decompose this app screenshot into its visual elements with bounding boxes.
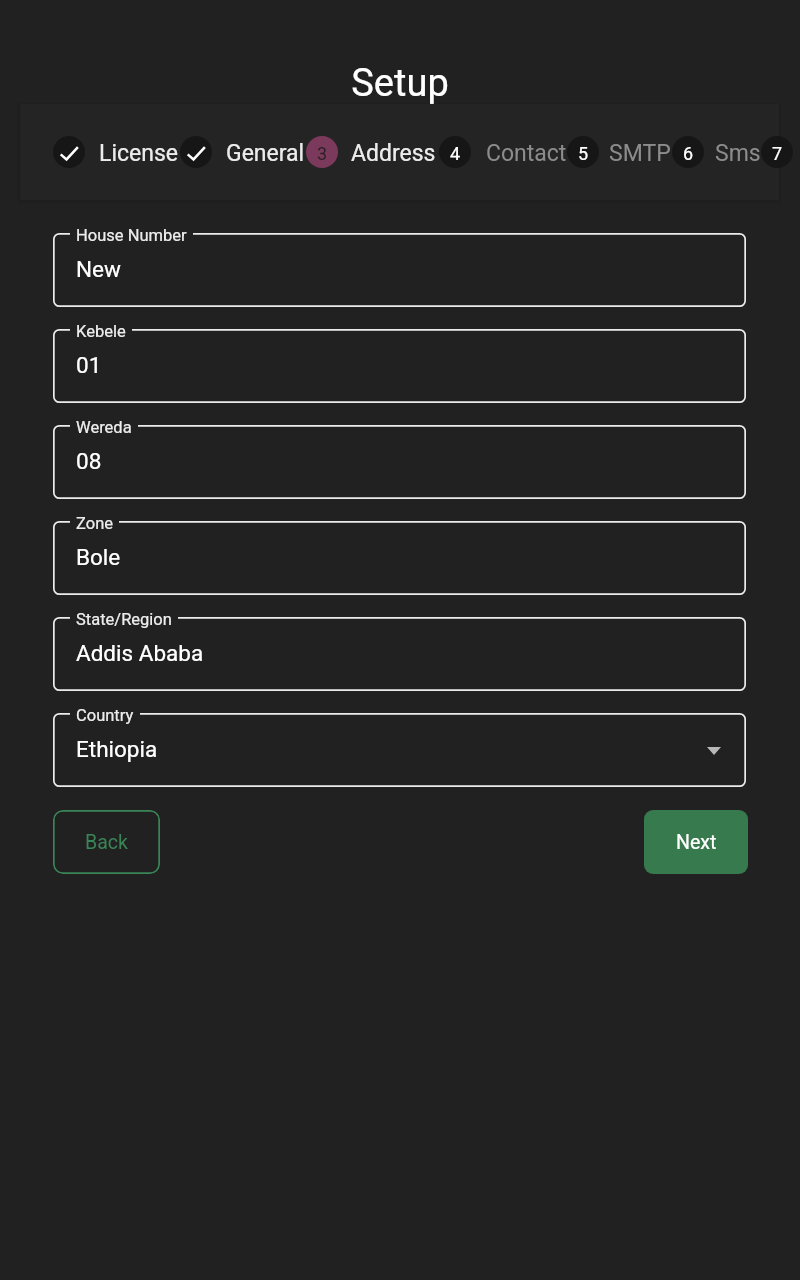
staticText: 08 — [76, 448, 102, 474]
staticText: Address — [351, 140, 436, 167]
staticText: 6 — [683, 143, 694, 164]
button[interactable]: State/Region — [53, 617, 746, 691]
other: Open dropdown — [707, 747, 721, 755]
button[interactable]: Zone — [53, 521, 746, 595]
button[interactable]: Step Address — [306, 136, 436, 168]
button[interactable]: Kebele — [53, 329, 746, 403]
staticText: Setup — [0, 61, 800, 106]
button[interactable]: Step License — [53, 136, 178, 168]
button[interactable]: Wereda — [53, 425, 746, 499]
button[interactable]: Back — [53, 810, 160, 874]
staticText: Bole — [76, 544, 121, 570]
button[interactable]: Step SMTP — [567, 136, 671, 168]
staticText: State/Region — [76, 610, 172, 629]
staticText: Zone — [76, 514, 113, 533]
button[interactable]: Country — [53, 713, 746, 787]
staticText: Addis Ababa — [76, 640, 204, 666]
staticText: 7 — [772, 143, 783, 164]
staticText: Back — [85, 831, 129, 854]
button[interactable]: Step General — [180, 136, 305, 168]
staticText: New — [76, 256, 121, 282]
staticText: Sms — [715, 140, 761, 167]
staticText: Wereda — [76, 418, 132, 437]
button[interactable]: Step Contact — [439, 136, 567, 168]
button[interactable]: Next — [644, 810, 748, 874]
staticText: 5 — [578, 143, 589, 164]
staticText: 3 — [317, 143, 328, 164]
button[interactable]: House Number — [53, 233, 746, 307]
staticText: Kebele — [76, 322, 126, 341]
staticText: 4 — [450, 143, 461, 164]
button[interactable]: Step 7 — [761, 136, 793, 168]
staticText: Next — [676, 831, 717, 854]
staticText: 01 — [76, 352, 102, 378]
staticText: Contact — [486, 140, 567, 167]
staticText: House Number — [76, 226, 187, 245]
staticText: SMTP — [609, 140, 671, 167]
staticText: General — [226, 140, 305, 167]
staticText: Country — [76, 706, 134, 725]
button[interactable]: Step Sms — [672, 136, 761, 168]
staticText: Ethiopia — [76, 736, 158, 762]
staticText: License — [99, 140, 178, 167]
